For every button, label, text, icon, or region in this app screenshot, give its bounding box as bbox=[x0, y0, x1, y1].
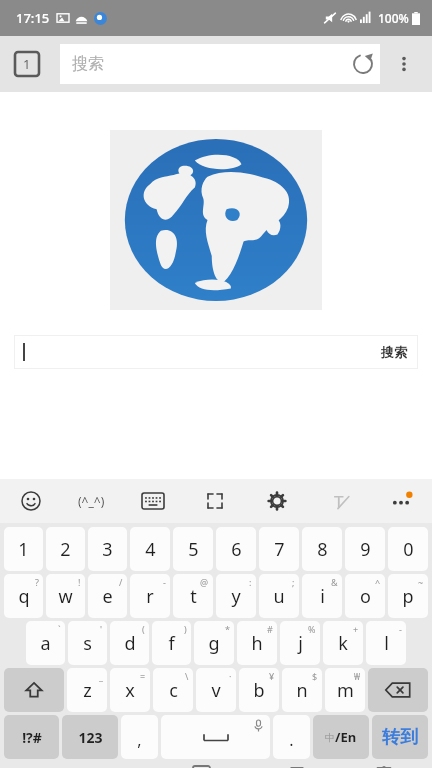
button[interactable]: del bbox=[368, 668, 428, 712]
staticText: , bbox=[137, 729, 142, 751]
button[interactable]: space bbox=[161, 715, 270, 759]
button[interactable]: t bbox=[173, 574, 213, 618]
button[interactable]: n bbox=[282, 668, 322, 712]
button[interactable]: 6 bbox=[216, 527, 256, 571]
button[interactable]: More options bbox=[384, 44, 424, 84]
button[interactable]: Reload bbox=[346, 47, 380, 81]
button[interactable]: !?# bbox=[4, 715, 59, 759]
button[interactable]: 7 bbox=[259, 527, 299, 571]
button[interactable]: c bbox=[153, 668, 193, 712]
button[interactable]: more bbox=[370, 479, 432, 523]
button[interactable]: 转到 bbox=[372, 715, 428, 759]
staticText: & bbox=[331, 576, 338, 588]
staticText: 2 bbox=[60, 537, 71, 562]
button[interactable]: x bbox=[110, 668, 150, 712]
staticText: : bbox=[249, 576, 252, 588]
staticText: d bbox=[124, 631, 136, 656]
staticText: @ bbox=[200, 576, 209, 588]
button[interactable]: 中 bbox=[313, 715, 369, 759]
button[interactable]: j bbox=[280, 621, 320, 665]
staticText: f bbox=[168, 631, 175, 656]
button[interactable]: r bbox=[130, 574, 170, 618]
button[interactable]: move bbox=[184, 479, 246, 523]
button[interactable]: 0 bbox=[388, 527, 428, 571]
staticText: ( bbox=[142, 623, 145, 635]
staticText: m bbox=[337, 678, 354, 703]
button[interactable]: b bbox=[239, 668, 279, 712]
staticText: l bbox=[384, 631, 389, 656]
button[interactable]: w bbox=[46, 574, 85, 618]
staticText: o bbox=[360, 584, 371, 609]
button[interactable]: v bbox=[196, 668, 236, 712]
button[interactable]: 搜索 bbox=[60, 44, 380, 84]
staticText: n bbox=[296, 678, 308, 703]
staticText: y bbox=[231, 584, 241, 609]
staticText: ? bbox=[35, 576, 39, 588]
button[interactable]: 9 bbox=[345, 527, 385, 571]
button[interactable]: kaomoji bbox=[61, 479, 122, 523]
button[interactable]: shift bbox=[4, 668, 64, 712]
button[interactable]: emoji bbox=[0, 479, 61, 523]
staticText: ₩ bbox=[354, 670, 361, 682]
staticText: 17:15 bbox=[16, 9, 50, 27]
button[interactable]: , bbox=[121, 715, 158, 759]
button[interactable]: 2 bbox=[46, 527, 85, 571]
button[interactable]: m bbox=[325, 668, 365, 712]
staticText: 123 bbox=[78, 728, 103, 747]
button[interactable]: a bbox=[26, 621, 65, 665]
staticText: 0 bbox=[403, 537, 414, 562]
button[interactable]: . bbox=[273, 715, 310, 759]
staticText: ~ bbox=[418, 576, 424, 588]
button[interactable]: h bbox=[237, 621, 277, 665]
staticText: 7 bbox=[274, 537, 285, 562]
button[interactable]: 4 bbox=[130, 527, 170, 571]
staticText: = bbox=[140, 670, 146, 682]
button[interactable]: settings bbox=[246, 479, 308, 523]
button[interactable]: s bbox=[68, 621, 107, 665]
staticText: # bbox=[267, 623, 273, 635]
button[interactable]: z bbox=[67, 668, 107, 712]
staticText: z bbox=[83, 678, 92, 703]
staticText: !?# bbox=[22, 728, 42, 747]
button[interactable]: g bbox=[194, 621, 234, 665]
button[interactable]: l bbox=[366, 621, 406, 665]
staticText: 100% bbox=[378, 10, 409, 26]
button[interactable]: i bbox=[302, 574, 342, 618]
staticText: p bbox=[402, 584, 414, 609]
staticText: 搜索 bbox=[381, 344, 407, 360]
staticText: 8 bbox=[317, 537, 328, 562]
staticText: 1 bbox=[23, 55, 31, 73]
button[interactable]: o bbox=[345, 574, 385, 618]
staticText: - bbox=[399, 623, 402, 635]
button[interactable]: 3 bbox=[88, 527, 127, 571]
staticText: w bbox=[58, 584, 73, 609]
button[interactable]: 8 bbox=[302, 527, 342, 571]
button[interactable]: p bbox=[388, 574, 428, 618]
staticText: + bbox=[353, 623, 359, 635]
button[interactable]: q bbox=[4, 574, 43, 618]
staticText: /En bbox=[335, 728, 357, 746]
staticText: _ bbox=[99, 670, 103, 682]
staticText: T bbox=[334, 490, 344, 513]
button[interactable]: 搜索 bbox=[15, 336, 417, 368]
staticText: 搜索 bbox=[72, 54, 346, 74]
staticText: c bbox=[169, 678, 178, 703]
button[interactable]: u bbox=[259, 574, 299, 618]
staticText: a bbox=[40, 631, 51, 656]
button[interactable]: keyboard bbox=[122, 479, 184, 523]
button[interactable]: 123 bbox=[62, 715, 118, 759]
button[interactable]: 5 bbox=[173, 527, 213, 571]
staticText: i bbox=[320, 584, 325, 609]
staticText: h bbox=[251, 631, 263, 656]
button[interactable]: e bbox=[88, 574, 127, 618]
button[interactable]: 1 bbox=[4, 527, 43, 571]
button[interactable]: Tabs bbox=[14, 51, 40, 77]
staticText: 6 bbox=[231, 537, 242, 562]
button[interactable]: d bbox=[110, 621, 149, 665]
button[interactable]: pen bbox=[308, 479, 370, 523]
staticText: s bbox=[83, 631, 92, 656]
button[interactable]: y bbox=[216, 574, 256, 618]
button[interactable]: k bbox=[323, 621, 363, 665]
staticText: 1 bbox=[18, 537, 29, 562]
button[interactable]: f bbox=[152, 621, 191, 665]
